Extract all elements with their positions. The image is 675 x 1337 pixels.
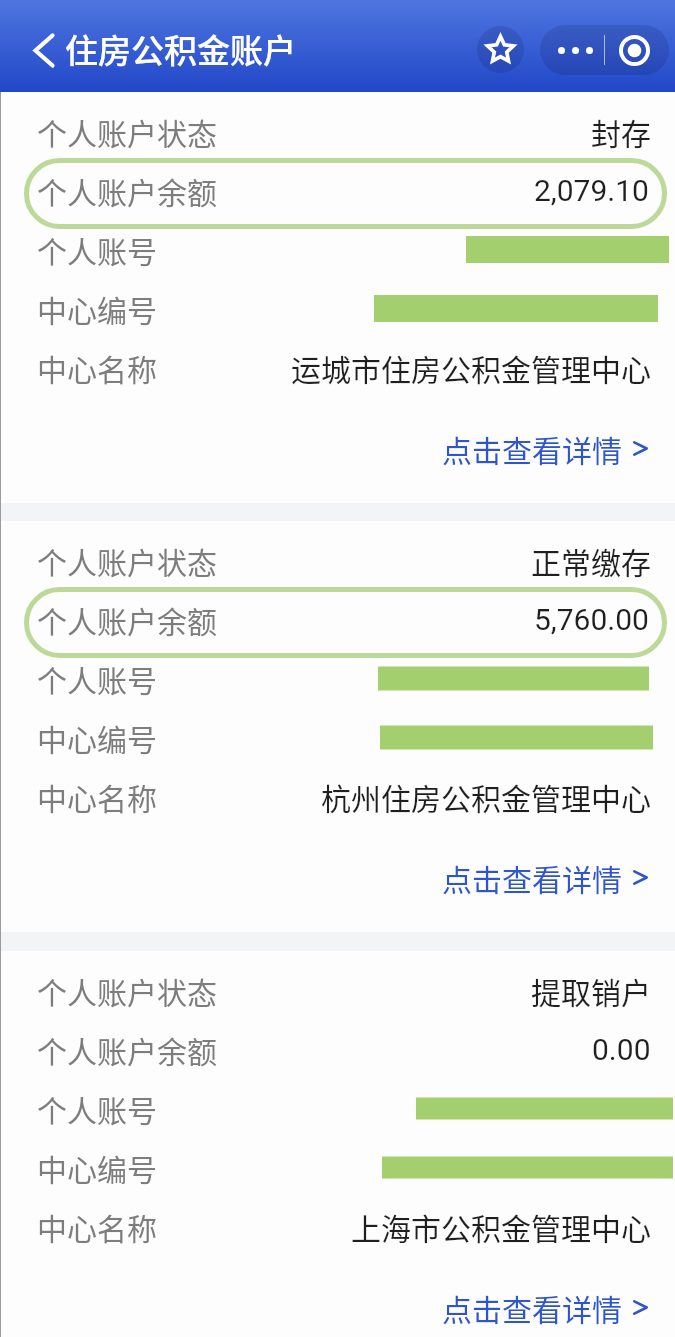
staticText: 中心名称 (37, 775, 157, 818)
staticText: 个人账号 (37, 1087, 157, 1130)
button[interactable]: Favorite (477, 26, 524, 73)
staticText: 住房公积金账户 (65, 25, 296, 73)
staticText: 0.00 (592, 1032, 651, 1067)
staticText: 中心名称 (37, 1205, 157, 1248)
button[interactable]: 点击查看详情 (0, 397, 675, 499)
staticText: 点击查看详情 (442, 1286, 622, 1329)
button[interactable]: Back (26, 30, 62, 70)
staticText: 杭州住房公积金管理中心 (321, 775, 651, 818)
staticText: 个人账号 (37, 228, 157, 271)
staticText: 5,760.00 (534, 602, 649, 637)
staticText: 封存 (591, 110, 651, 153)
staticText: 提取销户 (531, 969, 651, 1012)
staticText: 中心编号 (37, 1146, 157, 1189)
staticText: 中心编号 (37, 716, 157, 759)
staticText: 运城市住房公积金管理中心 (291, 346, 651, 389)
staticText: 个人账户状态 (37, 969, 217, 1012)
button[interactable]: 点击查看详情 (0, 826, 675, 928)
staticText: 2,079.10 (534, 173, 649, 208)
staticText: 点击查看详情 (442, 427, 622, 470)
staticText: 中心编号 (37, 287, 157, 330)
staticText: 正常缴存 (531, 539, 651, 582)
button[interactable]: More options (540, 25, 604, 75)
button[interactable]: Close mini program (605, 25, 669, 75)
button[interactable]: 点击查看详情 (0, 1256, 675, 1337)
staticText: 个人账户状态 (37, 110, 217, 153)
staticText: 上海市公积金管理中心 (351, 1205, 651, 1248)
staticText: 中心名称 (37, 346, 157, 389)
staticText: 点击查看详情 (442, 856, 622, 899)
staticText: 个人账号 (37, 657, 157, 700)
staticText: 个人账户余额 (37, 169, 217, 212)
staticText: 个人账户余额 (37, 1028, 217, 1071)
staticText: 个人账户状态 (37, 539, 217, 582)
staticText: 个人账户余额 (37, 598, 217, 641)
